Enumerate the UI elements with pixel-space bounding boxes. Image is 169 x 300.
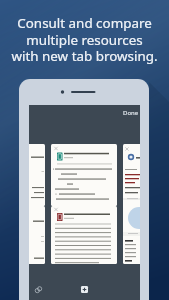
button[interactable]: Tabs bbox=[32, 283, 45, 296]
button[interactable]: Done bbox=[121, 106, 141, 120]
staticText: Consult and compare multiple resources w… bbox=[0, 14, 169, 65]
button[interactable]: Add tab bbox=[78, 283, 91, 296]
button[interactable] bbox=[51, 144, 117, 206]
button[interactable] bbox=[29, 144, 45, 206]
staticText: Done bbox=[123, 109, 139, 117]
button[interactable] bbox=[29, 206, 45, 264]
button[interactable] bbox=[123, 144, 140, 264]
button[interactable] bbox=[51, 206, 117, 264]
